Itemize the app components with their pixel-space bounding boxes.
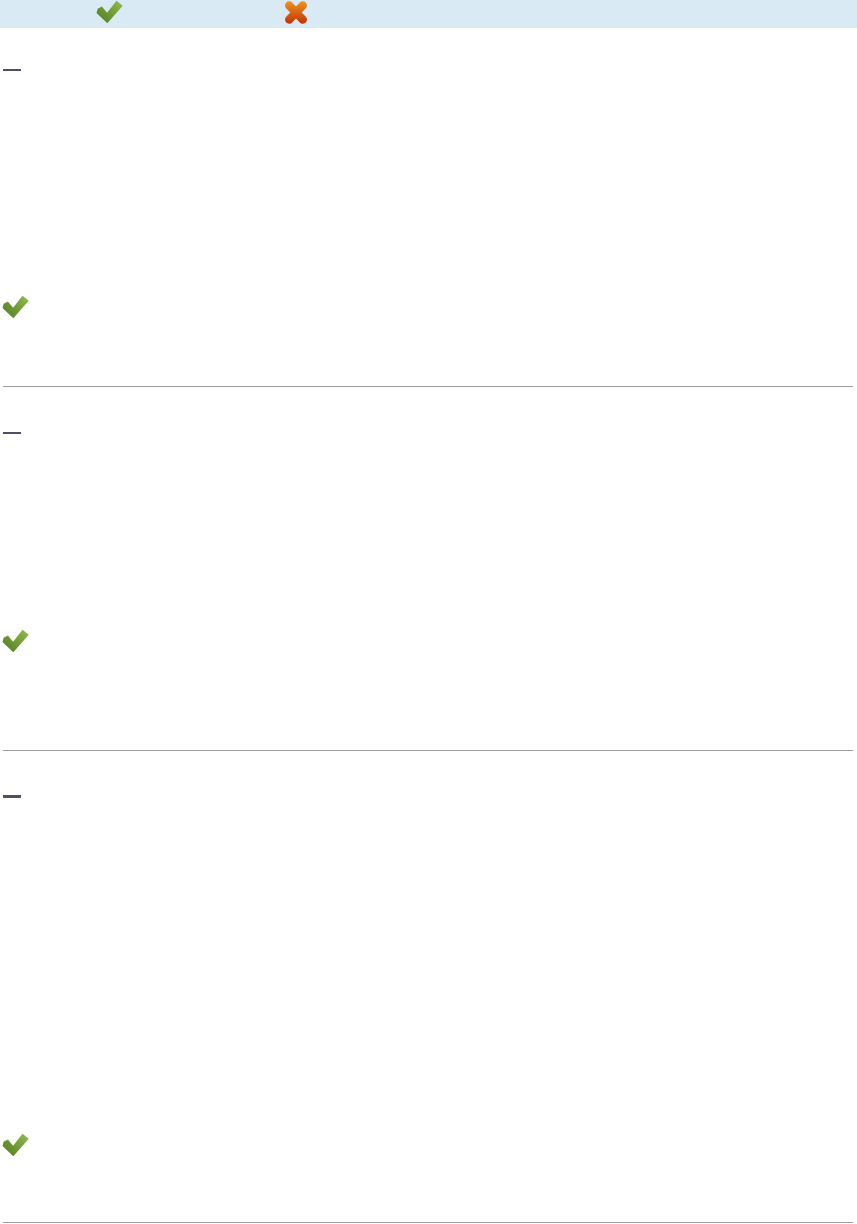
- button[interactable]: Checked: [2, 295, 29, 319]
- button[interactable]: Reject: [284, 0, 308, 25]
- button[interactable]: Checked: [2, 629, 29, 653]
- button[interactable]: Checked: [2, 1133, 29, 1157]
- button[interactable]: Accept: [96, 0, 123, 24]
